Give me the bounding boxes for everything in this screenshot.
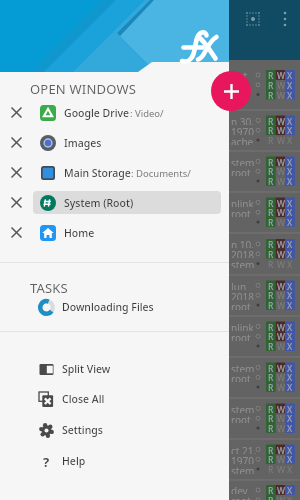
staticText: R: [268, 207, 274, 217]
staticText: stem: [231, 362, 255, 372]
staticText: root: [231, 413, 251, 423]
button[interactable]: Images: [33, 131, 221, 154]
staticText: X: [287, 423, 293, 433]
staticText: TASKS: [30, 279, 68, 295]
button[interactable]: Close All: [0, 384, 229, 414]
staticText: Google Drive: [64, 106, 130, 120]
staticText: X: [287, 322, 293, 332]
staticText: X: [287, 300, 293, 310]
staticText: R: [268, 217, 274, 227]
staticText: W: [277, 249, 285, 259]
staticText: R: [268, 341, 274, 351]
button[interactable]: Settings: [0, 415, 229, 445]
staticText: root: [231, 331, 251, 341]
button[interactable]: ?: [0, 446, 229, 476]
staticText: Oct: [231, 69, 248, 79]
staticText: W: [277, 281, 285, 291]
staticText: W: [277, 464, 285, 474]
staticText: 1970: [231, 454, 254, 464]
staticText: X: [287, 166, 293, 176]
button[interactable]: Close Main Storage: [0, 157, 33, 187]
staticText: R: [268, 363, 274, 373]
button[interactable]: Google Drive: [33, 101, 221, 124]
staticText: root: [231, 166, 251, 176]
staticText: n 30,: [231, 115, 254, 125]
staticText: Settings: [62, 423, 103, 437]
staticText: R: [268, 454, 274, 464]
staticText: root: [231, 300, 251, 310]
staticText: X: [287, 176, 293, 186]
staticText: W: [277, 90, 285, 100]
staticText: R: [268, 239, 274, 249]
staticText: R: [268, 382, 274, 392]
staticText: root: [231, 494, 251, 500]
staticText: W: [277, 445, 285, 455]
staticText: R: [268, 485, 274, 495]
staticText: W: [277, 176, 285, 186]
staticText: W: [277, 80, 285, 90]
staticText: X: [287, 404, 293, 414]
staticText: root: [231, 372, 251, 382]
staticText: X: [287, 290, 293, 300]
button[interactable]: Main Storage: [33, 161, 221, 184]
staticText: W: [277, 217, 285, 227]
staticText: Split View: [62, 362, 111, 376]
staticText: X: [287, 116, 293, 126]
staticText: W: [277, 372, 285, 382]
staticText: W: [277, 454, 285, 464]
staticText: Home: [64, 226, 95, 240]
staticText: nlink: [231, 197, 254, 207]
staticText: R: [268, 157, 274, 167]
button[interactable]: Add: [211, 71, 251, 111]
staticText: X: [287, 331, 293, 341]
staticText: W: [277, 300, 285, 310]
staticText: W: [277, 259, 285, 269]
staticText: X: [287, 198, 293, 208]
staticText: R: [268, 166, 274, 176]
staticText: stem: [231, 403, 255, 413]
staticText: Jun: [231, 280, 247, 290]
staticText: ct 21,: [231, 444, 257, 454]
button[interactable]: System (Root): [33, 191, 221, 214]
button[interactable]: Close Google Drive: [0, 97, 33, 127]
staticText: W: [277, 341, 285, 351]
button[interactable]: Close Images: [0, 127, 33, 157]
staticText: X: [287, 125, 293, 135]
staticText: W: [277, 322, 285, 332]
staticText: W: [277, 70, 285, 80]
staticText: ?: [43, 453, 50, 469]
button[interactable]: Downloading Files: [0, 293, 229, 321]
staticText: R: [268, 464, 274, 474]
staticText: W: [277, 495, 285, 500]
staticText: R: [268, 300, 274, 310]
staticText: R: [268, 70, 274, 80]
staticText: R: [268, 322, 274, 332]
staticText: R: [268, 290, 274, 300]
staticText: R: [268, 198, 274, 208]
staticText: R: [268, 90, 274, 100]
staticText: stem: [231, 464, 255, 474]
staticText: R: [268, 80, 274, 90]
staticText: R: [268, 176, 274, 186]
staticText: 2018: [231, 290, 254, 300]
button[interactable]: Home: [33, 221, 221, 244]
staticText: X: [287, 281, 293, 291]
staticText: W: [277, 331, 285, 341]
staticText: R: [268, 372, 274, 382]
staticText: X: [287, 217, 293, 227]
staticText: R: [268, 331, 274, 341]
button[interactable]: Close Home: [0, 217, 33, 247]
staticText: n 10,: [231, 238, 254, 248]
staticText: nlink: [231, 321, 254, 331]
staticText: : Video/: [130, 107, 164, 120]
staticText: R: [268, 281, 274, 291]
staticText: X: [287, 341, 293, 351]
button[interactable]: Split View: [0, 354, 229, 384]
staticText: X: [287, 464, 293, 474]
staticText: X: [287, 157, 293, 167]
staticText: R: [268, 125, 274, 135]
staticText: W: [277, 135, 285, 145]
staticText: R: [268, 423, 274, 433]
staticText: R: [268, 495, 274, 500]
button[interactable]: Close System (Root): [0, 187, 33, 217]
